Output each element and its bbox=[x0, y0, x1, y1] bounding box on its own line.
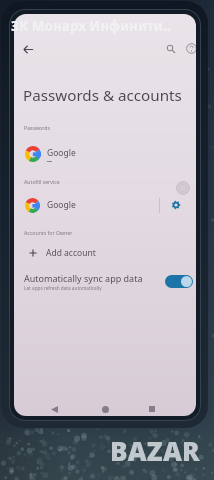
button[interactable]: Google bbox=[14, 140, 196, 168]
button[interactable]: Help bbox=[184, 41, 196, 56]
staticText: Autofill service bbox=[24, 178, 60, 185]
button[interactable]: Settings bbox=[166, 195, 186, 215]
staticText: Passwords & accounts bbox=[23, 85, 182, 106]
button[interactable]: Google bbox=[14, 194, 159, 216]
staticText: Google bbox=[47, 199, 76, 211]
button[interactable]: Home bbox=[98, 402, 112, 416]
staticText: Google bbox=[47, 147, 76, 159]
staticText: Let apps refresh data automatically bbox=[24, 285, 102, 291]
button[interactable]: Recents bbox=[145, 402, 159, 416]
staticText: Automatically sync app data bbox=[24, 272, 143, 284]
staticText: Accounts for Owner bbox=[24, 229, 73, 236]
staticText: Add account bbox=[46, 247, 96, 259]
button[interactable] bbox=[165, 275, 193, 288]
staticText: ЗК Монарх Инфинити.. bbox=[11, 17, 171, 35]
button[interactable]: Back bbox=[21, 42, 35, 56]
button[interactable]: Automatically sync app data bbox=[14, 268, 196, 294]
staticText: Passwords bbox=[24, 124, 50, 131]
button[interactable]: Back bbox=[47, 402, 61, 416]
staticText: BAZAR bbox=[110, 433, 200, 468]
button[interactable]: Search bbox=[163, 41, 178, 56]
button[interactable]: Add account bbox=[14, 242, 196, 263]
